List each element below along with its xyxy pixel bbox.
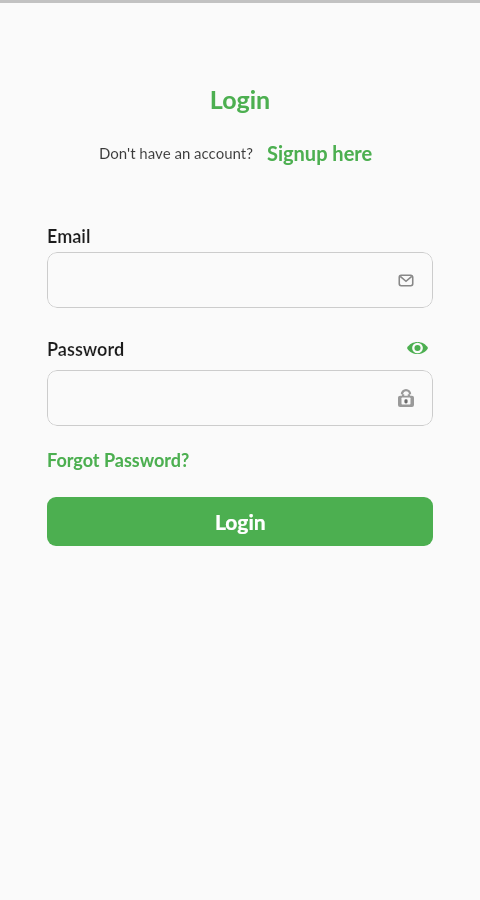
button[interactable]: Login	[47, 497, 433, 546]
button[interactable]: Forgot Password?	[47, 449, 190, 471]
staticText: Email	[47, 225, 91, 247]
button[interactable]: Show password	[403, 334, 431, 362]
staticText: Signup here	[267, 141, 373, 165]
staticText: Password	[47, 338, 125, 360]
button[interactable]: Email input field	[47, 252, 433, 308]
button[interactable]: Signup here	[267, 141, 373, 165]
staticText: Login	[215, 509, 266, 534]
staticText: Forgot Password?	[47, 449, 190, 471]
staticText: Login	[0, 84, 480, 114]
staticText: Don't have an account?	[99, 144, 254, 162]
button[interactable]: Password input field	[47, 370, 433, 426]
